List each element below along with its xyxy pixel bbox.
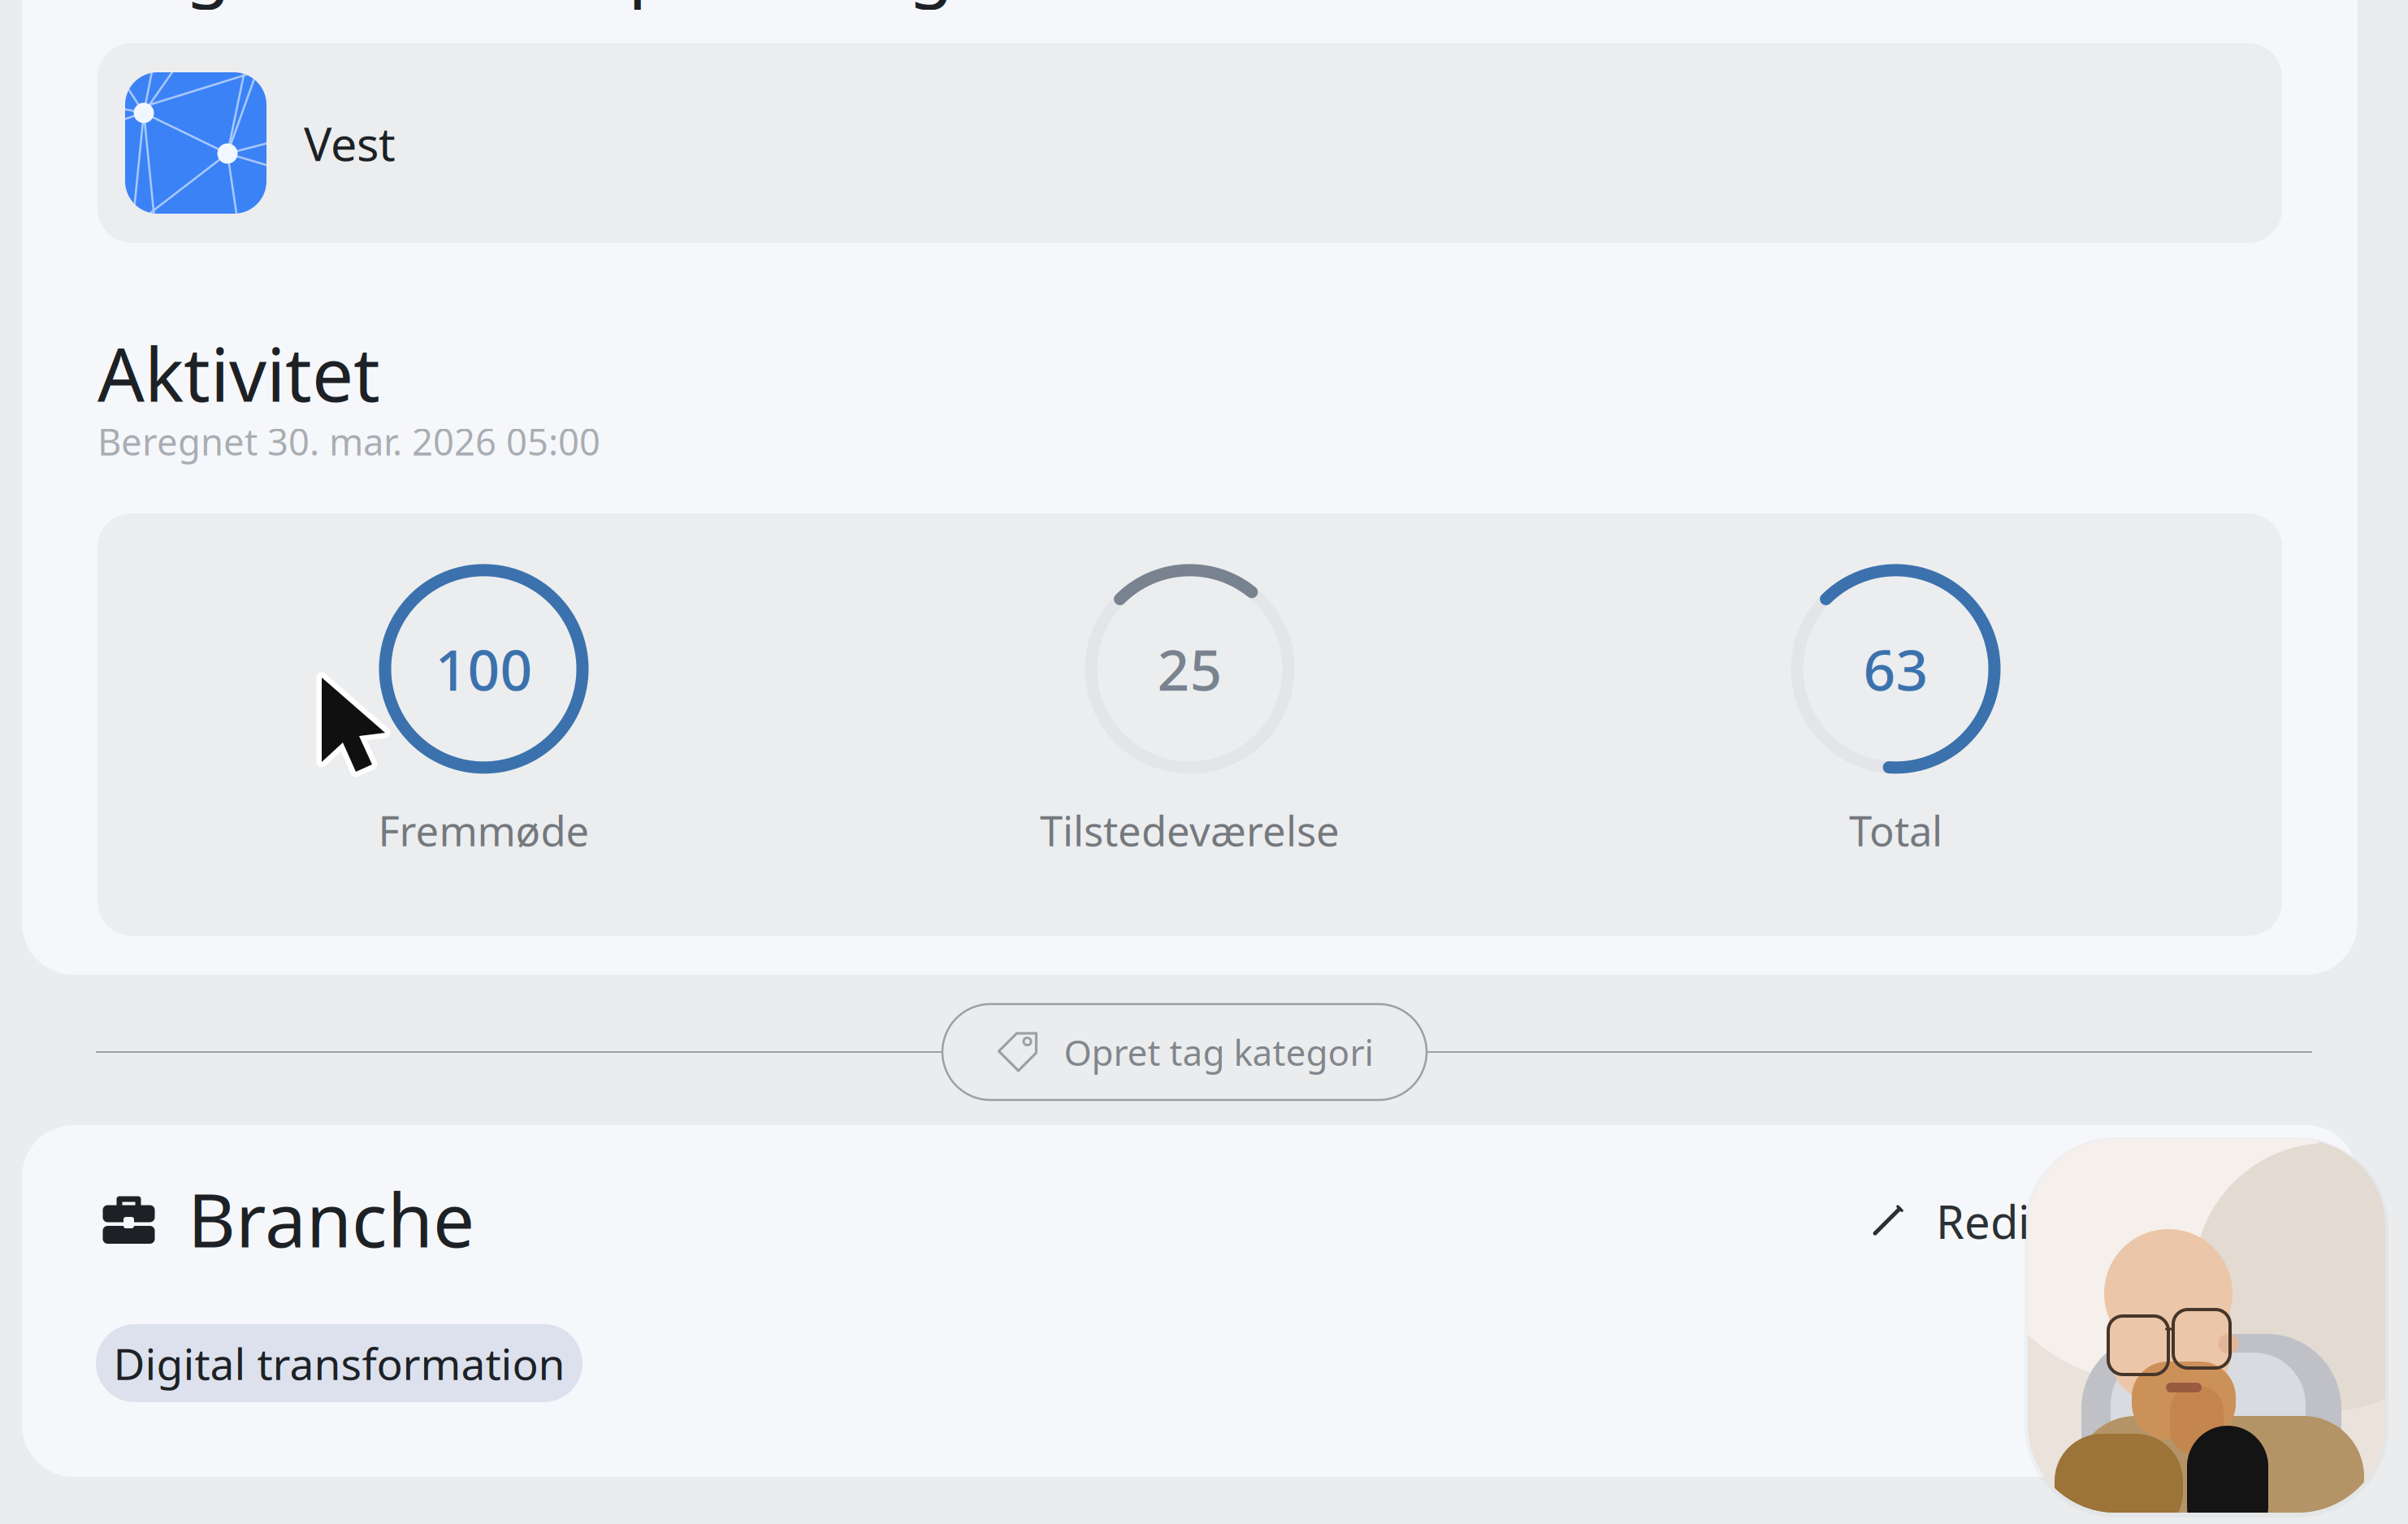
staticText: Fremmøde bbox=[378, 803, 589, 858]
staticText: 100 bbox=[435, 631, 533, 706]
staticText: Branche bbox=[188, 1170, 474, 1268]
staticText: Rediger bbox=[1936, 1191, 2102, 1251]
staticText: Beregnet 30. mar. 2026 05:00 bbox=[97, 417, 600, 466]
button[interactable]: Opret tag kategori bbox=[942, 1004, 1427, 1100]
staticText: Tilstedeværelse bbox=[1040, 803, 1340, 858]
staticText: Total bbox=[1849, 803, 1942, 858]
staticText: Aktivitet bbox=[97, 324, 380, 422]
staticText: Vest bbox=[304, 112, 396, 174]
staticText: Digital transformation bbox=[113, 1334, 565, 1392]
button[interactable]: Vest bbox=[97, 43, 2282, 243]
button[interactable]: Rediger bbox=[1873, 1191, 2102, 1251]
staticText: 25 bbox=[1157, 631, 1222, 706]
staticText: Organisationsopsætning bbox=[97, 0, 954, 13]
staticText: 63 bbox=[1863, 631, 1928, 706]
staticText: Opret tag kategori bbox=[1064, 1028, 1373, 1076]
